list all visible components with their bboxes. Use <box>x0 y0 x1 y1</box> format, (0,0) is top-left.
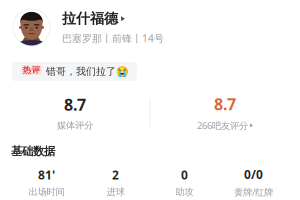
staticText: 错哥，我们拉了😭 <box>46 65 128 78</box>
button[interactable]: 8.7 <box>150 93 300 132</box>
button[interactable]: 热评 <box>12 62 137 81</box>
staticText: 巴塞罗那丨前锋丨14号 <box>62 31 164 45</box>
staticText: 0/0 <box>244 166 263 183</box>
staticText: 拉什福德 <box>62 10 118 27</box>
staticText: 2 <box>112 167 119 183</box>
button[interactable]: 拉什福德 <box>0 8 300 47</box>
staticText: 热评 <box>22 64 40 75</box>
staticText: 出场时间 <box>28 186 64 198</box>
staticText: 黄牌/红牌 <box>234 186 273 198</box>
staticText: 8.7 <box>64 94 86 115</box>
staticText: 媒体评分 <box>57 119 93 131</box>
staticText: 0 <box>181 167 188 183</box>
staticText: 助攻 <box>175 186 193 198</box>
staticText: 进球 <box>106 186 124 198</box>
staticText: 81' <box>38 167 55 183</box>
staticText: 266吧友评分 <box>197 119 248 132</box>
staticText: 8.7 <box>214 93 236 115</box>
staticText: 基础数据 <box>11 144 55 158</box>
